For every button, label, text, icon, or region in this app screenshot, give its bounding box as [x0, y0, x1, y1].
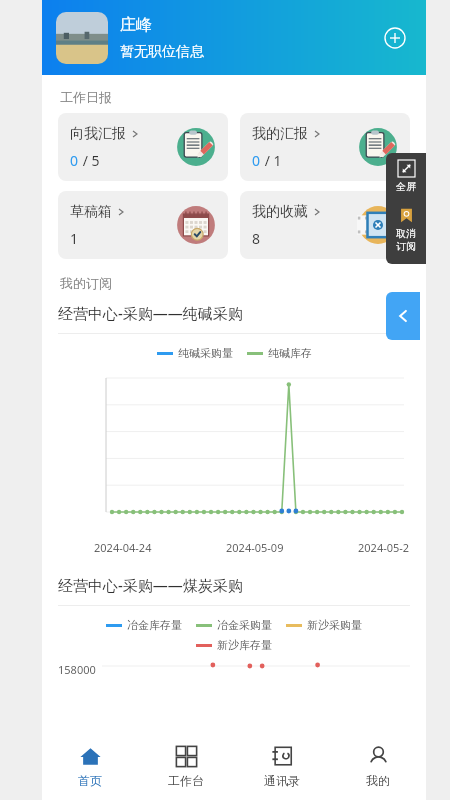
staticText: 我的汇报: [252, 125, 308, 143]
staticText: 我的: [366, 773, 390, 788]
staticText: 冶金采购量: [217, 618, 272, 632]
staticText: 取消 订阅: [396, 227, 416, 253]
staticText: 纯碱采购量: [178, 346, 233, 360]
button[interactable]: 我的汇报: [240, 113, 410, 181]
staticText: 0: [252, 151, 261, 170]
staticText: 全屏: [396, 180, 416, 193]
button[interactable]: 全屏: [386, 153, 426, 200]
staticText: 新沙库存量: [217, 638, 272, 652]
staticText: 1: [70, 229, 79, 248]
staticText: 2024-05-2: [358, 540, 410, 555]
button[interactable]: 添加: [378, 21, 412, 55]
staticText: 庄峰: [120, 15, 152, 35]
button[interactable]: 工作台: [138, 733, 234, 800]
staticText: 向我汇报: [70, 125, 126, 143]
staticText: 工作台: [168, 773, 204, 788]
staticText: 经营中心-采购——纯碱采购: [58, 303, 243, 323]
button[interactable]: 头像: [56, 12, 108, 64]
button[interactable]: 我的收藏: [240, 191, 410, 259]
button[interactable]: 向我汇报: [58, 113, 228, 181]
staticText: 冶金库存量: [127, 618, 182, 632]
staticText: 2024-04-24: [94, 540, 152, 555]
staticText: 新沙采购量: [307, 618, 362, 632]
staticText: 通讯录: [264, 773, 300, 788]
button[interactable]: 通讯录: [234, 733, 330, 800]
staticText: 0: [70, 151, 79, 170]
staticText: / 1: [261, 151, 282, 170]
staticText: 暂无职位信息: [120, 43, 204, 61]
staticText: 工作日报: [60, 89, 112, 105]
button[interactable]: 我的: [330, 733, 426, 800]
staticText: 经营中心-采购——煤炭采购: [58, 575, 243, 595]
staticText: / 5: [79, 151, 100, 170]
staticText: 我的收藏: [252, 203, 308, 221]
staticText: 首页: [78, 773, 102, 788]
staticText: 我的订阅: [60, 275, 112, 291]
button[interactable]: 首页: [42, 733, 138, 800]
staticText: 草稿箱: [70, 203, 112, 221]
staticText: 8: [252, 229, 261, 248]
button[interactable]: 草稿箱: [58, 191, 228, 259]
button[interactable]: 取消 订阅: [386, 200, 426, 260]
staticText: 158000: [58, 662, 96, 677]
staticText: 纯碱库存: [268, 346, 312, 360]
button[interactable]: 展开: [386, 292, 420, 340]
staticText: 2024-05-09: [226, 540, 284, 555]
